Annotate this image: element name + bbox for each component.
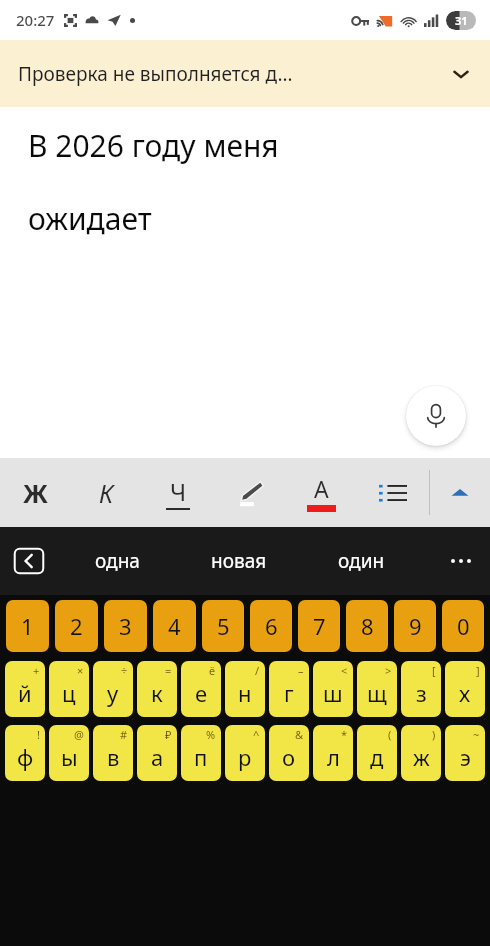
staticText: 3 bbox=[119, 611, 132, 641]
staticText: – bbox=[298, 663, 304, 678]
button[interactable]: Text color bbox=[285, 458, 357, 527]
staticText: [ bbox=[432, 663, 436, 678]
staticText: в bbox=[107, 742, 120, 772]
button[interactable]: одна bbox=[56, 527, 178, 595]
button[interactable]: – bbox=[269, 661, 309, 717]
staticText: у bbox=[107, 678, 119, 708]
staticText: 31 bbox=[455, 13, 468, 28]
staticText: / bbox=[255, 663, 260, 678]
staticText: 4 bbox=[168, 611, 181, 641]
staticText: ) bbox=[432, 727, 436, 742]
staticText: э bbox=[460, 742, 471, 772]
staticText: 7 bbox=[313, 611, 326, 641]
button[interactable]: ₽ bbox=[137, 725, 177, 781]
button[interactable]: + bbox=[5, 661, 45, 717]
button[interactable]: ( bbox=[357, 725, 397, 781]
staticText: л bbox=[327, 742, 340, 772]
staticText: н bbox=[238, 678, 252, 708]
button[interactable]: × bbox=[49, 661, 89, 717]
staticText: ^ bbox=[253, 727, 260, 742]
button[interactable]: 3 bbox=[104, 600, 147, 652]
button[interactable]: Bold bbox=[0, 458, 71, 527]
staticText: 6 bbox=[265, 611, 278, 641]
staticText: ₽ bbox=[165, 727, 172, 742]
staticText: ц bbox=[62, 678, 76, 708]
button[interactable]: & bbox=[269, 725, 309, 781]
staticText: ( bbox=[388, 727, 392, 742]
staticText: > bbox=[385, 663, 392, 678]
button[interactable]: 6 bbox=[250, 600, 292, 652]
button[interactable]: ^ bbox=[225, 725, 265, 781]
button[interactable]: More options bbox=[432, 527, 490, 595]
button[interactable]: Проверка не выполняется д… bbox=[0, 40, 490, 107]
staticText: ф bbox=[17, 742, 34, 772]
staticText: й bbox=[18, 678, 32, 708]
button[interactable]: Bulleted list bbox=[357, 458, 429, 527]
staticText: = bbox=[165, 663, 172, 678]
button[interactable]: ~ bbox=[445, 725, 485, 781]
button[interactable]: > bbox=[357, 661, 397, 717]
button[interactable]: = bbox=[137, 661, 177, 717]
staticText: 5 bbox=[217, 611, 230, 641]
button[interactable]: [ bbox=[401, 661, 441, 717]
button[interactable]: / bbox=[225, 661, 265, 717]
staticText: ÷ bbox=[121, 663, 128, 678]
staticText: ш bbox=[323, 678, 343, 708]
button[interactable]: ] bbox=[445, 661, 485, 717]
button[interactable]: 5 bbox=[202, 600, 244, 652]
staticText: Ч bbox=[170, 475, 187, 508]
button[interactable]: Highlight bbox=[213, 458, 285, 527]
staticText: е bbox=[195, 678, 208, 708]
button[interactable]: 4 bbox=[153, 600, 196, 652]
staticText: ~ bbox=[473, 727, 480, 742]
staticText: ! bbox=[37, 727, 40, 742]
staticText: новая bbox=[211, 548, 267, 574]
button[interactable]: 1 bbox=[6, 600, 49, 652]
button[interactable]: Underline bbox=[142, 458, 213, 527]
button[interactable]: Italic bbox=[71, 458, 142, 527]
button[interactable]: 7 bbox=[298, 600, 340, 652]
button[interactable]: новая bbox=[178, 527, 300, 595]
staticText: < bbox=[341, 663, 348, 678]
button[interactable]: 8 bbox=[346, 600, 388, 652]
button[interactable]: * bbox=[313, 725, 353, 781]
button[interactable]: ! bbox=[5, 725, 45, 781]
staticText: х bbox=[459, 678, 471, 708]
button[interactable]: # bbox=[93, 725, 133, 781]
button[interactable]: Voice input bbox=[406, 386, 466, 446]
staticText: д bbox=[370, 742, 384, 772]
button[interactable]: < bbox=[313, 661, 353, 717]
staticText: В 2026 году меня bbox=[28, 125, 279, 166]
staticText: г bbox=[284, 678, 294, 708]
staticText: ожидает bbox=[28, 198, 152, 239]
button[interactable]: 9 bbox=[394, 600, 436, 652]
staticText: п bbox=[194, 742, 208, 772]
button[interactable]: ё bbox=[181, 661, 221, 717]
staticText: % bbox=[206, 727, 216, 742]
button[interactable]: @ bbox=[49, 725, 89, 781]
staticText: * bbox=[341, 727, 348, 742]
button[interactable]: 2 bbox=[55, 600, 98, 652]
staticText: р bbox=[238, 742, 252, 772]
staticText: ё bbox=[209, 663, 216, 678]
staticText: 1 bbox=[21, 611, 34, 641]
staticText: @ bbox=[74, 727, 84, 742]
staticText: ы bbox=[61, 742, 78, 772]
button[interactable]: % bbox=[181, 725, 221, 781]
staticText: ж bbox=[413, 742, 430, 772]
button[interactable]: 0 bbox=[442, 600, 484, 652]
staticText: ] bbox=[476, 663, 480, 678]
button[interactable]: Previous bbox=[12, 547, 46, 575]
staticText: # bbox=[120, 727, 128, 742]
button[interactable]: More bbox=[430, 458, 490, 527]
button[interactable]: ) bbox=[401, 725, 441, 781]
staticText: з bbox=[416, 678, 427, 708]
staticText: + bbox=[33, 663, 40, 678]
staticText: 9 bbox=[409, 611, 422, 641]
button[interactable]: ÷ bbox=[93, 661, 133, 717]
button[interactable]: один bbox=[300, 527, 422, 595]
staticText: 2 bbox=[70, 611, 83, 641]
staticText: × bbox=[77, 663, 84, 678]
staticText: A bbox=[314, 473, 329, 504]
staticText: 8 bbox=[361, 611, 374, 641]
